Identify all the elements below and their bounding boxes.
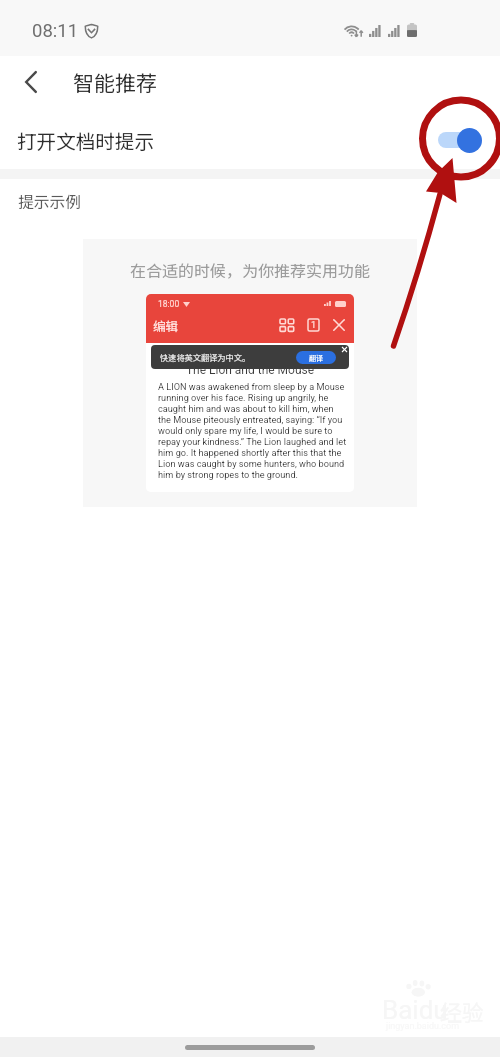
staticText: 编辑 (153, 316, 179, 334)
staticText: 提示示例 (18, 190, 82, 213)
staticText: 18:00 (158, 299, 180, 309)
button[interactable]: 打开文档时提示 (0, 111, 500, 169)
staticText: Baidu (382, 995, 448, 1025)
staticText: 智能推荐 (73, 67, 157, 97)
staticText: 1 (311, 320, 317, 331)
staticText: 在合适的时候，为你推荐实用功能 (130, 258, 371, 281)
staticText: A LION was awakened from sleep by a Mous… (158, 381, 348, 480)
staticText: 08:11 (32, 20, 79, 42)
staticText: 经验 (440, 995, 485, 1027)
staticText: 翻译 (309, 353, 323, 363)
staticText: 快速将英文翻译为中文。 (160, 351, 251, 363)
staticText: 打开文档时提示 (17, 126, 155, 154)
button[interactable]: Prompt when opening document (438, 127, 482, 153)
button[interactable]: 翻译 (296, 351, 336, 364)
button[interactable]: Back (8, 59, 54, 105)
staticText: The Lion and the Mouse (156, 363, 344, 377)
